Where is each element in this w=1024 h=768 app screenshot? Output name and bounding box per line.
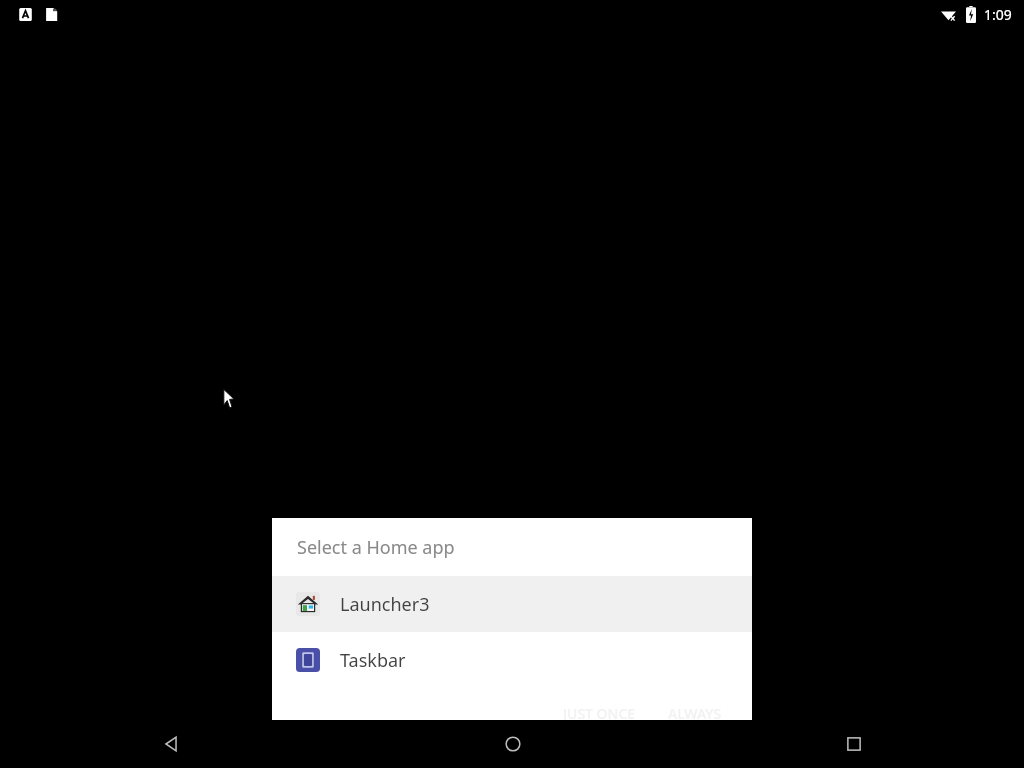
button[interactable]: Back [0, 720, 342, 768]
staticText: JUST ONCE [563, 704, 636, 723]
button[interactable]: Recent apps [683, 720, 1024, 768]
button[interactable]: Launcher3 [272, 576, 752, 632]
button[interactable]: Taskbar [272, 632, 752, 688]
button[interactable]: JUST ONCE [555, 700, 644, 727]
staticText: Launcher3 [340, 592, 430, 617]
button[interactable]: Home [342, 720, 683, 768]
button[interactable]: ALWAYS [660, 700, 730, 727]
staticText: Select a Home app [297, 535, 455, 560]
staticText: 1:09 [984, 5, 1012, 24]
staticText: ALWAYS [668, 704, 722, 723]
staticText: Taskbar [340, 648, 406, 673]
